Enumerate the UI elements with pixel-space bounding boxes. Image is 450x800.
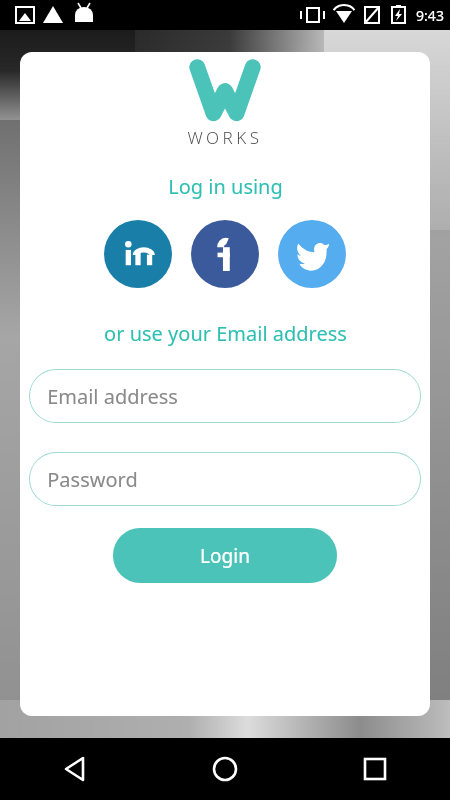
button[interactable]: Twitter login (278, 220, 346, 288)
staticText: Email address (47, 383, 178, 410)
staticText: WORKS (187, 126, 263, 149)
button[interactable]: Email address (29, 369, 421, 423)
staticText: Log in using (168, 173, 283, 200)
staticText: Password (47, 466, 138, 493)
button[interactable]: Login (113, 528, 337, 583)
button[interactable]: Password (29, 452, 421, 506)
button[interactable]: Recent apps (300, 738, 450, 800)
staticText: Login (200, 543, 250, 569)
button[interactable]: LinkedIn login (104, 220, 172, 288)
button[interactable]: Facebook login (191, 220, 259, 288)
button[interactable]: Back (0, 738, 150, 800)
button[interactable]: Home (150, 738, 300, 800)
staticText: or use your Email address (104, 320, 347, 347)
staticText: 9:43 (416, 6, 444, 25)
